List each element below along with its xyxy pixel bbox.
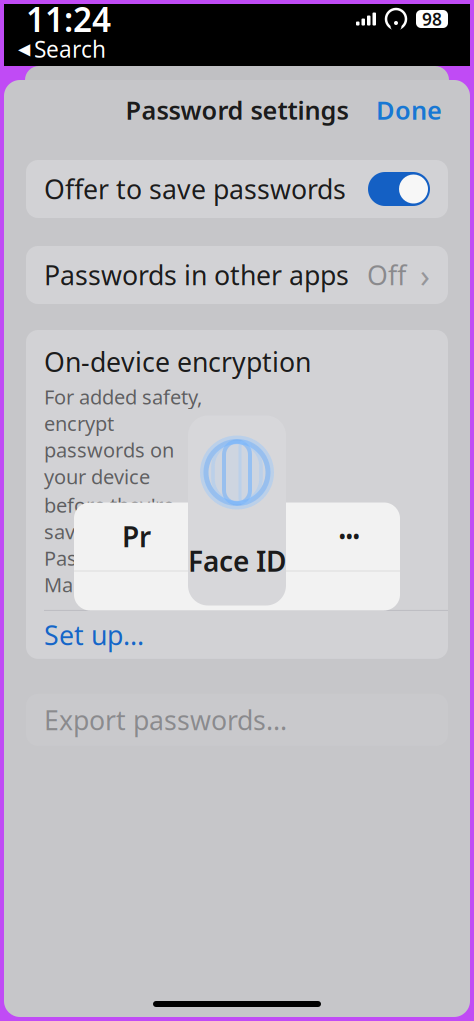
button[interactable]: Set up... — [26, 611, 448, 659]
button[interactable]: Passwords in other apps — [4, 246, 470, 304]
staticText: 98 — [422, 7, 442, 30]
button[interactable]: Offer to save passwords — [4, 160, 470, 218]
staticText: › — [420, 254, 430, 296]
staticText: Off — [367, 257, 406, 293]
staticText: Offer to save passwords — [44, 171, 346, 207]
staticText: ••• — [339, 525, 360, 548]
staticText: Pr — [122, 518, 151, 555]
staticText: Passwords in other apps — [44, 257, 349, 293]
staticText: Done — [376, 93, 442, 127]
staticText: Search — [34, 34, 106, 64]
staticText: On-device encryption — [44, 344, 311, 379]
button[interactable]: Export passwords... — [4, 694, 470, 746]
staticText: For added safety, encrypt passwords on y… — [44, 383, 202, 490]
staticText: before they're saved to Google Password … — [44, 492, 194, 598]
staticText: Set up... — [44, 617, 144, 653]
staticText: 11:24 — [26, 0, 111, 41]
button[interactable]: Done — [362, 85, 456, 135]
staticText: Password settings — [125, 93, 348, 127]
staticText: Face ID — [188, 542, 286, 579]
staticText: ◀ — [18, 40, 30, 58]
staticText: Export passwords... — [44, 702, 287, 738]
